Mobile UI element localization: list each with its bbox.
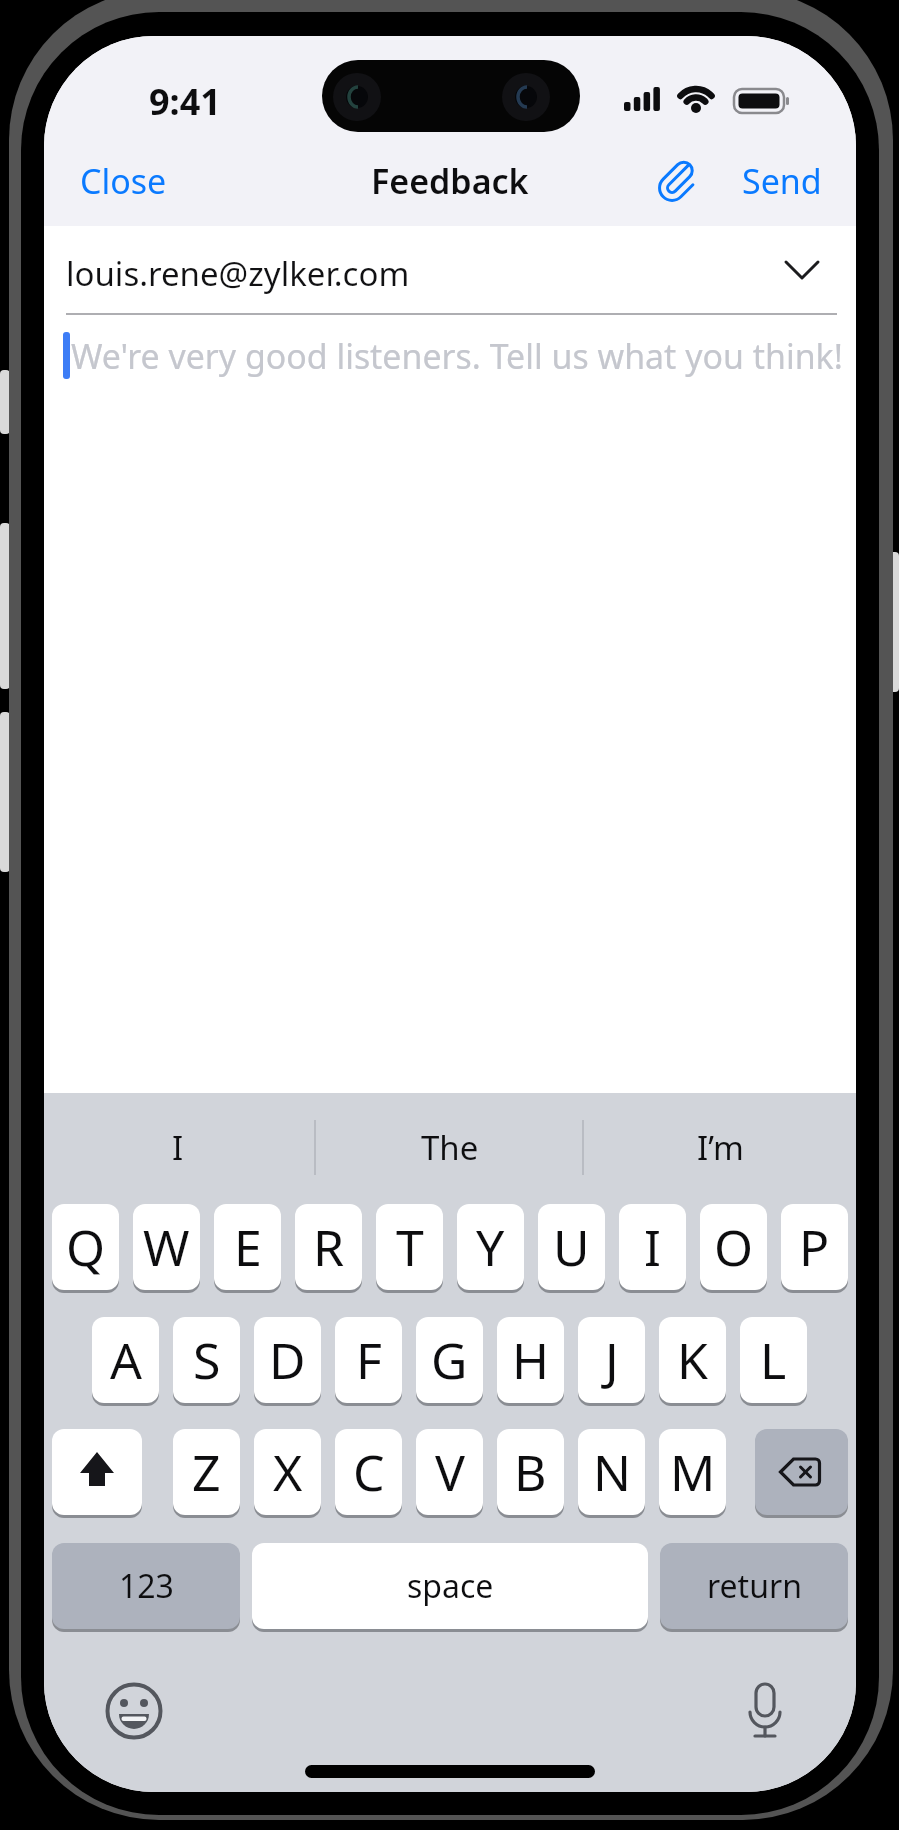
button[interactable] [755,1429,848,1515]
staticText: S [193,1326,221,1394]
button[interactable]: H [497,1317,564,1403]
button[interactable]: W [133,1204,200,1290]
button[interactable]: Z [173,1429,240,1515]
button[interactable]: G [416,1317,483,1403]
button[interactable]: Y [457,1204,524,1290]
staticText: X [273,1438,303,1506]
staticText: R [313,1213,345,1281]
staticText: I [644,1213,661,1281]
button[interactable]: C [335,1429,402,1515]
staticText: O [714,1213,754,1281]
staticText: louis.rene@zylker.com [66,251,410,296]
button[interactable]: U [538,1204,605,1290]
button[interactable]: O [700,1204,767,1290]
staticText: T [396,1213,424,1281]
button[interactable]: Send [684,156,822,206]
staticText: G [431,1326,468,1394]
button[interactable]: P [781,1204,848,1290]
staticText: I’m [697,1125,744,1170]
button[interactable]: louis.rene@zylker.com [66,248,566,298]
button[interactable]: X [254,1429,321,1515]
staticText: L [760,1326,787,1394]
staticText: H [512,1326,550,1394]
button[interactable]: M [659,1429,726,1515]
button[interactable]: V [416,1429,483,1515]
staticText: E [234,1213,262,1281]
button[interactable]: 123 [52,1543,240,1629]
staticText: Q [66,1213,106,1281]
staticText: U [553,1213,590,1281]
button[interactable]: Q [52,1204,119,1290]
staticText: The [421,1125,479,1170]
staticText: W [143,1213,190,1281]
staticText: N [593,1438,631,1506]
staticText: A [110,1326,142,1394]
staticText: Send [742,158,822,204]
button[interactable] [52,1429,142,1515]
button[interactable]: D [254,1317,321,1403]
button[interactable]: T [376,1204,443,1290]
staticText: We're very good listeners. Tell us what … [71,333,843,379]
button[interactable]: K [659,1317,726,1403]
button[interactable]: J [578,1317,645,1403]
staticText: Feedback [371,158,529,204]
staticText: P [799,1213,830,1281]
button[interactable]: The [400,1122,500,1172]
staticText: K [677,1326,708,1394]
button[interactable] [731,1676,799,1744]
button[interactable]: N [578,1429,645,1515]
button[interactable]: Close [80,156,190,206]
button[interactable] [644,148,710,214]
button[interactable]: I [128,1122,228,1172]
button[interactable]: F [335,1317,402,1403]
staticText: space [407,1564,494,1608]
staticText: Y [476,1213,505,1281]
button[interactable]: E [214,1204,281,1290]
button[interactable]: return [660,1543,848,1629]
staticText: D [269,1326,306,1394]
button[interactable]: B [497,1429,564,1515]
staticText: V [435,1438,465,1506]
button[interactable]: L [740,1317,807,1403]
staticText: 123 [119,1564,174,1608]
staticText: Z [192,1438,221,1506]
staticText: return [707,1564,802,1608]
button[interactable]: space [252,1543,648,1629]
button[interactable] [100,1677,168,1745]
staticText: J [605,1326,619,1394]
button[interactable]: I [619,1204,686,1290]
button[interactable]: I’m [670,1122,770,1172]
staticText: Close [80,158,167,204]
staticText: 9:41 [149,77,221,126]
staticText: B [514,1438,547,1506]
staticText: C [353,1438,385,1506]
button[interactable]: R [295,1204,362,1290]
staticText: F [356,1326,382,1394]
staticText: M [670,1438,716,1506]
button[interactable]: A [92,1317,159,1403]
button[interactable]: S [173,1317,240,1403]
staticText: I [172,1125,184,1170]
